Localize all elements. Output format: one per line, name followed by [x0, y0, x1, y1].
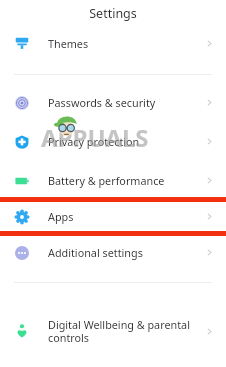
button[interactable]: Passwords and security [0, 86, 226, 119]
button[interactable]: Privacy protection [0, 125, 226, 158]
button[interactable]: Battery and performance [0, 164, 226, 197]
staticText: Apps [48, 209, 74, 224]
staticText: Passwords & security [48, 95, 156, 110]
staticText: Additional settings [48, 245, 143, 260]
staticText: Digital Wellbeing & parental controls [48, 317, 190, 345]
button[interactable]: Themes [0, 27, 226, 59]
staticText: Themes [48, 36, 89, 51]
staticText: Privacy protection [48, 134, 140, 149]
staticText: Battery & performance [48, 173, 165, 188]
staticText: APPUALS [41, 121, 149, 154]
staticText: Settings [89, 5, 137, 22]
button[interactable]: Apps [0, 202, 226, 231]
button[interactable]: Digital Wellbeing and parental controls [0, 310, 226, 352]
button[interactable]: Additional settings [0, 236, 226, 269]
